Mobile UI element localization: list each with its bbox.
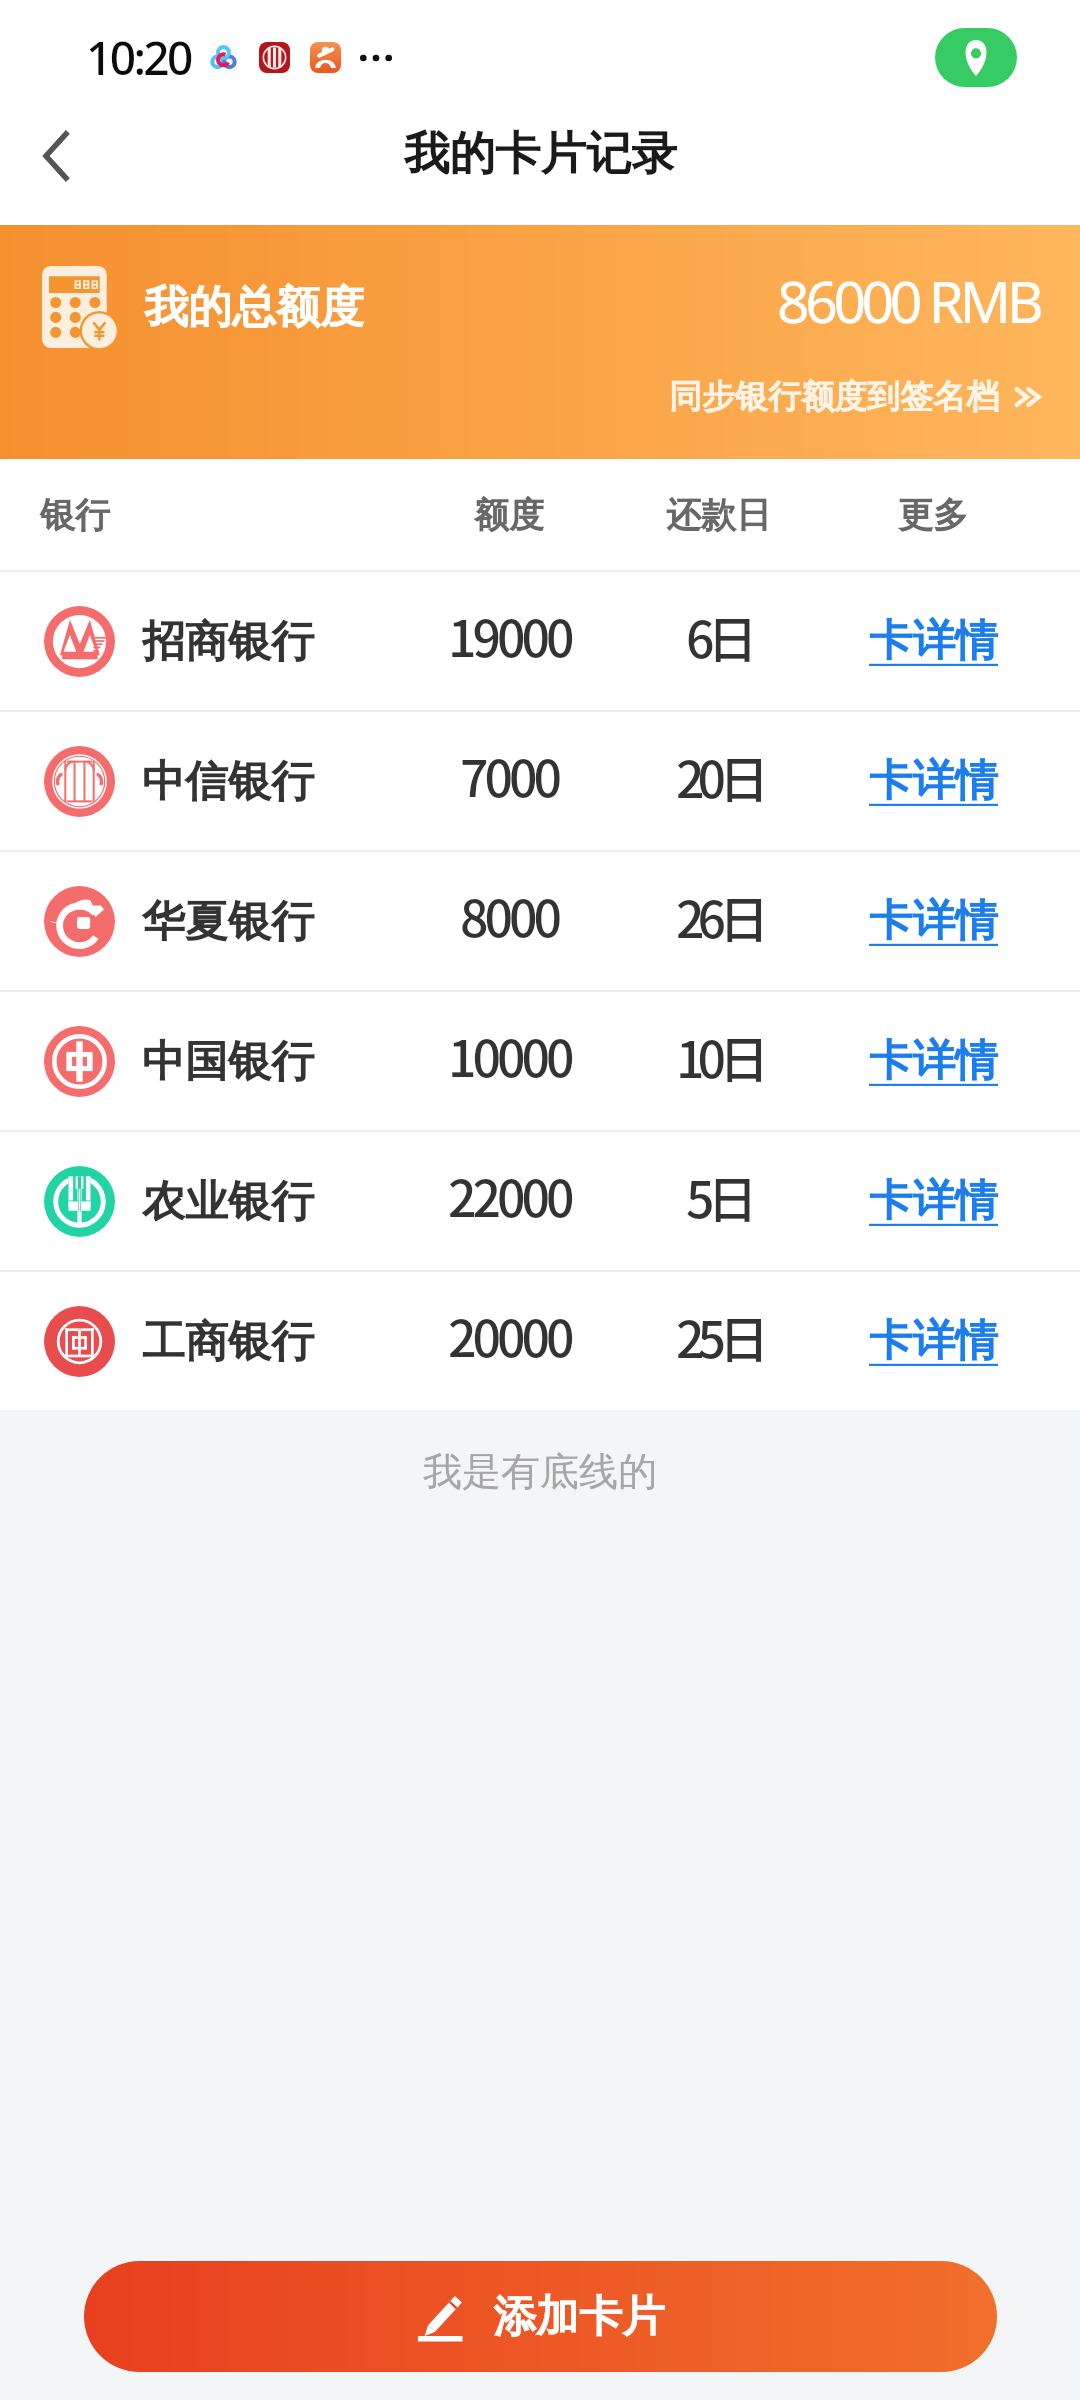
staticText: 25日 [676, 1300, 762, 1372]
staticText: 10000 [448, 1019, 571, 1091]
staticText: 中国银行 [142, 1035, 314, 1089]
button[interactable]: 同步银行额度到签名档 [669, 376, 1042, 418]
button[interactable]: 卡详情 [786, 1272, 1080, 1410]
staticText: 招商银行 [142, 615, 314, 669]
staticText: 我的卡片记录 [404, 125, 677, 182]
staticText: 卡详情 [869, 614, 998, 668]
staticText: 5日 [686, 1160, 751, 1232]
button[interactable]: 工商银行 [0, 1272, 1080, 1410]
staticText: 银行 [40, 493, 110, 537]
staticText: 卡详情 [869, 894, 998, 948]
button[interactable]: Back [0, 110, 112, 202]
button[interactable]: 中国银行 [0, 992, 1080, 1130]
staticText: 农业银行 [142, 1175, 314, 1229]
staticText: 卡详情 [869, 1314, 998, 1368]
button[interactable]: 卡详情 [786, 1132, 1080, 1270]
staticText: 10:20 [86, 26, 191, 89]
button[interactable]: 卡详情 [786, 852, 1080, 990]
staticText: 19000 [448, 599, 571, 671]
staticText: 工商银行 [142, 1315, 314, 1369]
staticText: 10日 [676, 1020, 762, 1092]
staticText: 卡详情 [869, 754, 998, 808]
button[interactable]: 卡详情 [786, 572, 1080, 710]
button[interactable]: 中信银行 [0, 712, 1080, 850]
button[interactable]: 卡详情 [786, 992, 1080, 1130]
staticText: 中信银行 [142, 755, 314, 809]
staticText: 华夏银行 [142, 895, 314, 949]
staticText: 我的总额度 [144, 280, 364, 335]
staticText: 20日 [676, 740, 762, 812]
staticText: 添加卡片 [493, 2290, 665, 2344]
staticText: 7000 [460, 739, 558, 811]
staticText: 26日 [676, 880, 762, 952]
staticText: 卡详情 [869, 1034, 998, 1088]
staticText: 86000 RMB [777, 262, 1040, 340]
staticText: 卡详情 [869, 1174, 998, 1228]
button[interactable]: 农业银行 [0, 1132, 1080, 1270]
button[interactable]: 华夏银行 [0, 852, 1080, 990]
button[interactable]: 卡详情 [786, 712, 1080, 850]
staticText: 额度 [474, 493, 544, 537]
staticText: 同步银行额度到签名档 [669, 376, 999, 418]
staticText: 6日 [686, 600, 751, 672]
button[interactable]: 招商银行 [0, 572, 1080, 710]
staticText: 22000 [448, 1159, 571, 1231]
staticText: 我是有底线的 [423, 1447, 657, 1496]
staticText: 还款日 [666, 493, 771, 537]
button[interactable]: Location [935, 28, 1017, 87]
staticText: 8000 [460, 879, 558, 951]
staticText: 更多 [898, 493, 968, 537]
button[interactable]: 添加卡片 [84, 2261, 997, 2372]
staticText: 20000 [448, 1299, 571, 1371]
